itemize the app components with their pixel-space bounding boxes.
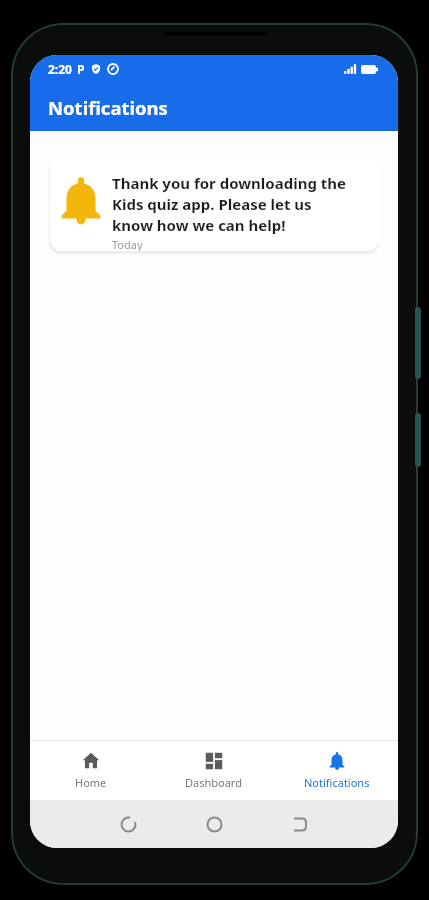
staticText: Home	[75, 775, 107, 790]
staticText: Today	[112, 237, 143, 251]
button[interactable]	[206, 816, 223, 833]
button[interactable]: Thank you for downloading the Kids quiz …	[50, 157, 379, 251]
button[interactable]: Home	[30, 740, 152, 800]
button[interactable]: Dashboard	[152, 740, 275, 800]
staticText: Thank you for downloading the Kids quiz …	[112, 173, 347, 236]
staticText: Notifications	[48, 95, 168, 120]
button[interactable]	[291, 816, 308, 833]
staticText: Dashboard	[185, 775, 242, 790]
button[interactable]: Notifications	[275, 740, 398, 800]
staticText: 2:20	[48, 61, 72, 77]
button[interactable]	[120, 816, 137, 833]
staticText: Notifications	[304, 775, 370, 790]
staticText: P	[77, 61, 85, 77]
